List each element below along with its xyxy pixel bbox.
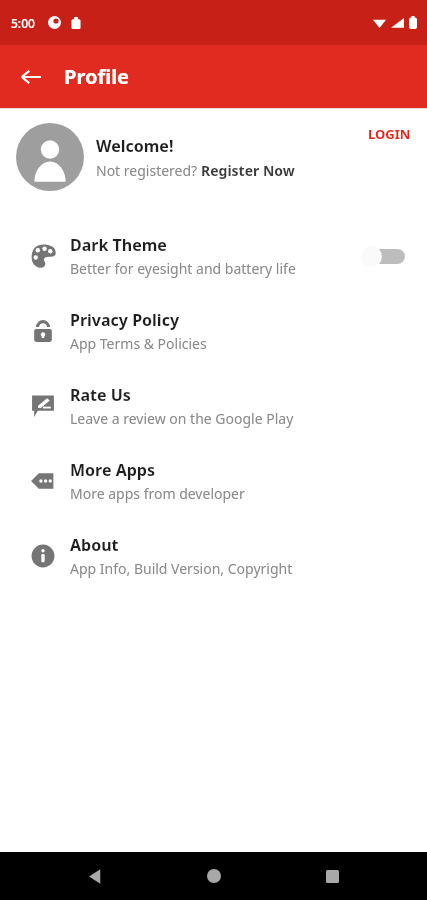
- button[interactable]: Recent apps: [308, 852, 356, 900]
- staticText: LOGIN: [368, 125, 411, 143]
- button[interactable]: Welcome!: [0, 123, 427, 191]
- staticText: Not registered?: [96, 161, 201, 180]
- button[interactable]: Back: [10, 56, 52, 98]
- staticText: App Info, Build Version, Copyright: [70, 559, 293, 578]
- button[interactable]: Back: [71, 852, 119, 900]
- button[interactable]: LOGIN: [360, 121, 419, 147]
- staticText: Better for eyesight and battery life: [70, 259, 296, 278]
- button[interactable]: About: [0, 518, 427, 593]
- staticText: App Terms & Policies: [70, 334, 207, 353]
- staticText: 5:00: [11, 15, 35, 31]
- staticText: Welcome!: [96, 135, 174, 157]
- staticText: More apps from developer: [70, 484, 245, 503]
- staticText: Privacy Policy: [70, 309, 180, 331]
- staticText: About: [70, 534, 119, 556]
- button[interactable]: Dark Theme: [0, 218, 427, 293]
- button[interactable]: More Apps: [0, 443, 427, 518]
- staticText: Rate Us: [70, 384, 131, 406]
- staticText: Dark Theme: [70, 234, 167, 256]
- button[interactable]: Register Now: [201, 161, 295, 180]
- button[interactable]: Privacy Policy: [0, 293, 427, 368]
- button[interactable]: Dark Theme toggle: [361, 243, 407, 269]
- staticText: Profile: [64, 63, 130, 90]
- button[interactable]: Home: [190, 852, 238, 900]
- staticText: More Apps: [70, 459, 155, 481]
- staticText: Leave a review on the Google Play: [70, 409, 294, 428]
- button[interactable]: Rate Us: [0, 368, 427, 443]
